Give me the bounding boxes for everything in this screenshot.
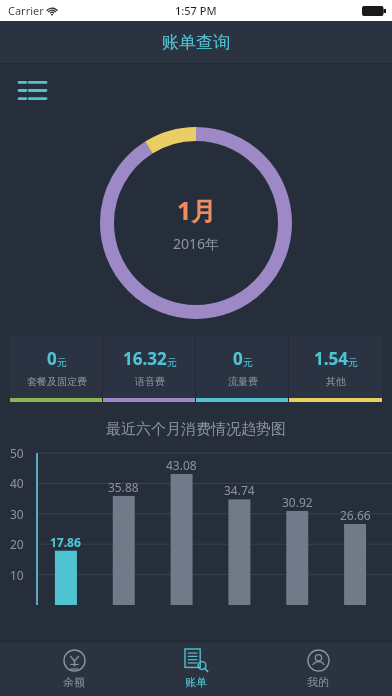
staticText: 我的 — [307, 675, 329, 689]
staticText: 17.86 — [50, 534, 81, 550]
staticText: 0 — [47, 347, 57, 370]
staticText: 2016年 — [173, 234, 220, 253]
staticText: 余额 — [63, 675, 85, 689]
button[interactable]: 0 — [196, 336, 289, 402]
button[interactable]: 余额 — [26, 642, 122, 696]
button[interactable]: 我的 — [270, 642, 366, 696]
staticText: 35.88 — [108, 479, 139, 495]
staticText: 流量费 — [228, 375, 258, 388]
button[interactable]: 账单 — [148, 642, 244, 696]
staticText: 语音费 — [135, 375, 165, 388]
button[interactable]: 0 — [10, 336, 103, 402]
staticText: 其他 — [326, 375, 346, 388]
staticText: 34.74 — [224, 482, 255, 498]
staticText: 1.54 — [314, 347, 348, 370]
staticText: 10 — [10, 567, 24, 583]
staticText: 50 — [10, 445, 24, 461]
staticText: 元 — [57, 356, 67, 369]
staticText: 20 — [10, 536, 24, 552]
staticText: 30.92 — [282, 494, 313, 510]
staticText: 1:57 PM — [175, 3, 217, 18]
staticText: 0 — [233, 347, 243, 370]
staticText: 40 — [10, 475, 24, 491]
staticText: Carrier — [8, 3, 44, 18]
staticText: 26.66 — [340, 507, 371, 523]
staticText: 1月 — [177, 193, 217, 227]
staticText: 元 — [348, 356, 358, 369]
staticText: 元 — [243, 356, 253, 369]
button[interactable]: List — [12, 70, 52, 110]
button[interactable]: 1.54 — [289, 336, 382, 402]
button[interactable]: 16.32 — [103, 336, 196, 402]
staticText: 元 — [167, 356, 177, 369]
staticText: 最近六个月消费情况趋势图 — [106, 420, 286, 439]
staticText: 账单查询 — [162, 32, 230, 53]
staticText: 30 — [10, 506, 24, 522]
staticText: 套餐及固定费 — [27, 375, 87, 388]
staticText: 账单 — [185, 675, 207, 689]
staticText: 43.08 — [166, 457, 197, 473]
staticText: 16.32 — [123, 347, 167, 370]
